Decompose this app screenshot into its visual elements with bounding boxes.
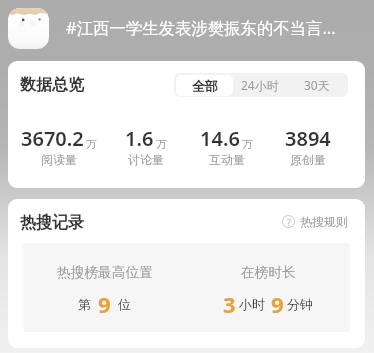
staticText: ?	[287, 216, 291, 228]
staticText: 讨论量	[128, 152, 164, 167]
button[interactable]: 24小时	[231, 73, 289, 97]
staticText: 小时	[239, 296, 265, 312]
staticText: 阅读量	[41, 152, 77, 167]
staticText: 30天	[304, 77, 330, 93]
staticText: #江西一学生发表涉樊振东的不当言...	[66, 16, 336, 38]
staticText: 9	[271, 289, 284, 319]
button[interactable]: 全部	[176, 75, 233, 96]
staticText: 数据总览	[20, 75, 84, 95]
button[interactable]: Rules help	[282, 214, 348, 229]
staticText: 分钟	[287, 296, 313, 312]
staticText: 第	[78, 296, 91, 312]
button[interactable]: App icon	[8, 8, 49, 49]
staticText: 3894	[285, 125, 331, 152]
staticText: 3670.2	[21, 125, 84, 152]
staticText: 14.6	[200, 125, 240, 152]
staticText: 热搜榜最高位置	[57, 264, 153, 281]
staticText: 24小时	[241, 77, 279, 93]
staticText: 1.6	[125, 125, 154, 152]
staticText: 万	[86, 137, 97, 151]
staticText: 互动量	[209, 152, 245, 167]
staticText: 万	[242, 137, 253, 151]
other: Rules help	[282, 215, 295, 228]
staticText: 原创量	[290, 152, 326, 167]
staticText: 热搜规则	[300, 214, 348, 229]
staticText: 位	[118, 296, 131, 312]
staticText: 3	[223, 289, 236, 319]
staticText: 全部	[192, 78, 218, 94]
staticText: 万	[156, 137, 167, 151]
staticText: 在榜时长	[241, 264, 296, 281]
staticText: 热搜记录	[20, 213, 84, 233]
button[interactable]: 30天	[289, 73, 344, 97]
staticText: 9	[98, 289, 111, 319]
